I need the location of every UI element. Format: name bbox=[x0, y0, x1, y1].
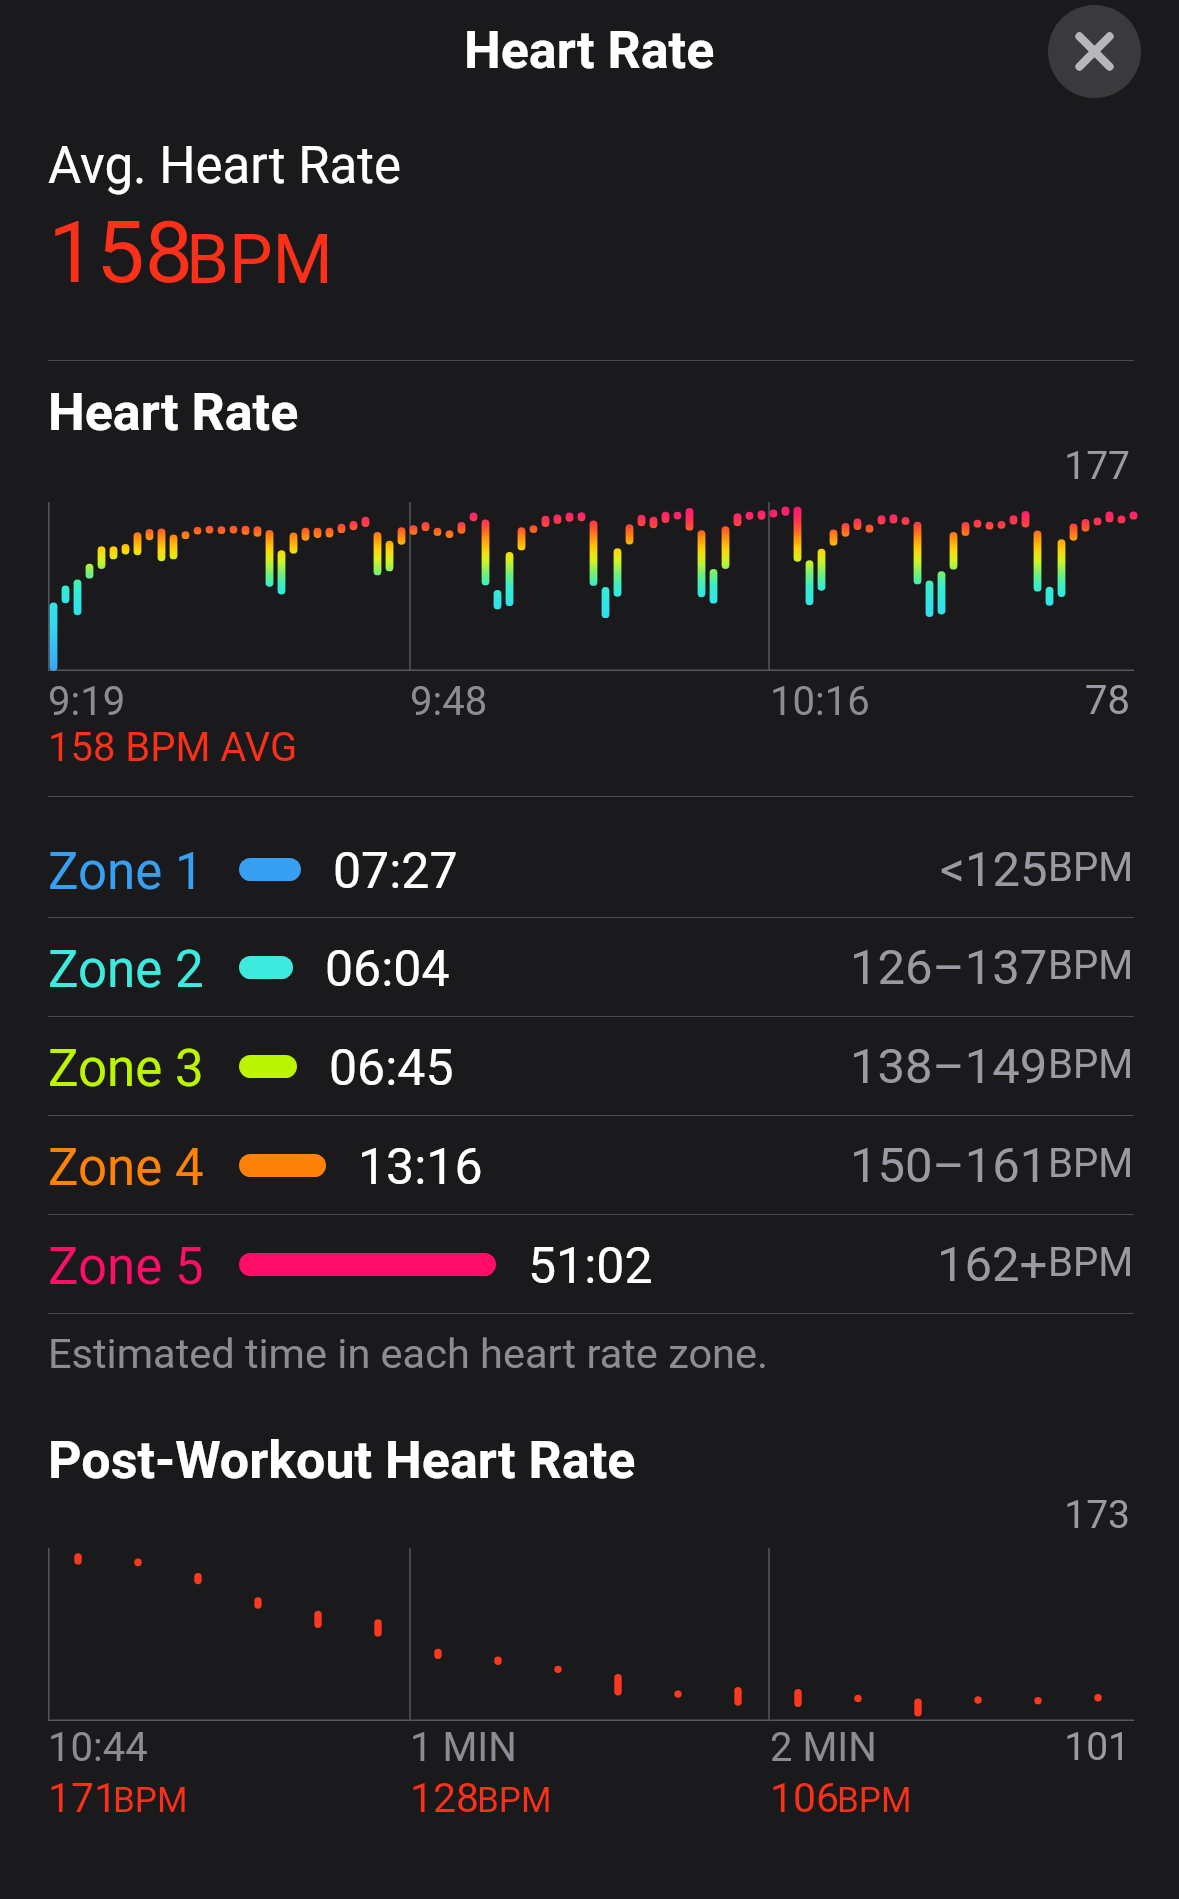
staticText: 101 bbox=[1030, 1724, 1130, 1770]
staticText: 10:16 bbox=[770, 678, 870, 725]
staticText: 10:44 bbox=[48, 1724, 148, 1771]
staticText: Avg. Heart Rate bbox=[48, 136, 402, 196]
staticText: 173 bbox=[1030, 1492, 1130, 1538]
staticText: Zone 3 bbox=[48, 1039, 204, 1099]
button[interactable]: Zone 1 bbox=[0, 796, 1179, 917]
staticText: Estimated time in each heart rate zone. bbox=[48, 1329, 768, 1378]
staticText: Zone 4 bbox=[48, 1138, 204, 1198]
staticText: Zone 5 bbox=[48, 1237, 204, 1297]
staticText: 150–161 bbox=[850, 1137, 1048, 1194]
staticText: 138–149 bbox=[850, 1038, 1048, 1095]
staticText: 9:48 bbox=[410, 678, 488, 725]
staticText: 06:04 bbox=[325, 940, 450, 999]
button[interactable]: Zone 3 bbox=[0, 1016, 1179, 1115]
staticText: Zone 1 bbox=[48, 842, 204, 902]
staticText: BPM bbox=[1048, 1239, 1134, 1286]
button[interactable]: Close bbox=[1048, 5, 1141, 98]
staticText: 158 BPM AVG bbox=[48, 724, 298, 771]
staticText: BPM bbox=[837, 1780, 912, 1821]
staticText: 13:16 bbox=[358, 1138, 483, 1197]
staticText: 2 MIN bbox=[770, 1724, 877, 1771]
staticText: 1 MIN bbox=[410, 1724, 517, 1771]
staticText: BPM bbox=[1048, 942, 1134, 989]
staticText: Heart Rate bbox=[464, 20, 715, 81]
staticText: 07:27 bbox=[333, 842, 458, 901]
staticText: 171 bbox=[48, 1774, 118, 1822]
staticText: 128 bbox=[410, 1774, 480, 1822]
staticText: 06:45 bbox=[329, 1039, 454, 1098]
staticText: BPM bbox=[477, 1780, 552, 1821]
staticText: 177 bbox=[1030, 443, 1130, 489]
staticText: BPM bbox=[1048, 844, 1134, 891]
button[interactable]: Zone 5 bbox=[0, 1214, 1179, 1313]
staticText: 106 bbox=[770, 1774, 840, 1822]
staticText: 126–137 bbox=[850, 939, 1048, 996]
button[interactable]: Zone 2 bbox=[0, 917, 1179, 1016]
staticText: BPM bbox=[1048, 1041, 1134, 1088]
staticText: 158 bbox=[48, 202, 193, 303]
staticText: Zone 2 bbox=[48, 940, 204, 1000]
staticText: 51:02 bbox=[528, 1237, 653, 1296]
staticText: BPM bbox=[1048, 1140, 1134, 1187]
button[interactable]: Zone 4 bbox=[0, 1115, 1179, 1214]
staticText: 78 bbox=[1030, 677, 1130, 724]
staticText: 162+ bbox=[937, 1236, 1048, 1293]
staticText: Heart Rate bbox=[48, 382, 299, 443]
staticText: BPM bbox=[186, 219, 333, 300]
staticText: BPM bbox=[113, 1780, 188, 1821]
staticText: Post-Workout Heart Rate bbox=[48, 1430, 636, 1491]
staticText: <125 bbox=[940, 841, 1048, 898]
staticText: 9:19 bbox=[48, 678, 126, 725]
